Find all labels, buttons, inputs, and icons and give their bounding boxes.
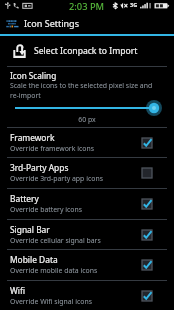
staticText: Override battery icons [10,205,83,214]
staticText: Override cellular signal bars [10,236,101,245]
staticText: Override mobile data icons [10,266,98,275]
button[interactable]: Signal Bar [0,220,174,249]
button[interactable]: Toggle [140,289,154,303]
button[interactable]: Icon Settings [0,11,174,34]
button[interactable]: Toggle [140,228,154,242]
button[interactable]: Toggle [140,166,154,180]
staticText: Override framework icons [10,144,95,153]
staticText: Icon Settings [24,17,79,29]
staticText: Scale the icons to the selected pixel si… [10,81,153,100]
button[interactable]: Toggle [140,197,154,211]
staticText: Battery [10,193,39,204]
button[interactable]: 3rd-Party Apps [0,158,174,187]
staticText: Override Wifi signal icons [10,297,93,306]
staticText: Icon Scaling [10,70,57,81]
button[interactable]: Icon Scaling [0,67,174,129]
staticText: Mobile Data [10,254,58,265]
button[interactable]: Toggle [140,258,154,272]
staticText: 60 px [0,115,174,124]
staticText: Override 3rd-party app icons [10,174,103,183]
staticText: Select Iconpack to Import [34,45,138,57]
staticText: Signal Bar [10,224,50,235]
staticText: 2:03 PM [69,0,105,11]
staticText: 3G [130,1,138,8]
button[interactable]: Select Iconpack to Import [0,36,174,66]
button[interactable]: Wifi [0,281,174,310]
button[interactable]: Toggle [140,136,154,150]
button[interactable]: Battery [0,189,174,218]
staticText: Framework [10,132,55,143]
button[interactable]: Mobile Data [0,250,174,279]
button[interactable]: Framework [0,128,174,157]
staticText: Wifi [10,285,26,296]
staticText: 3rd-Party Apps [10,162,69,173]
